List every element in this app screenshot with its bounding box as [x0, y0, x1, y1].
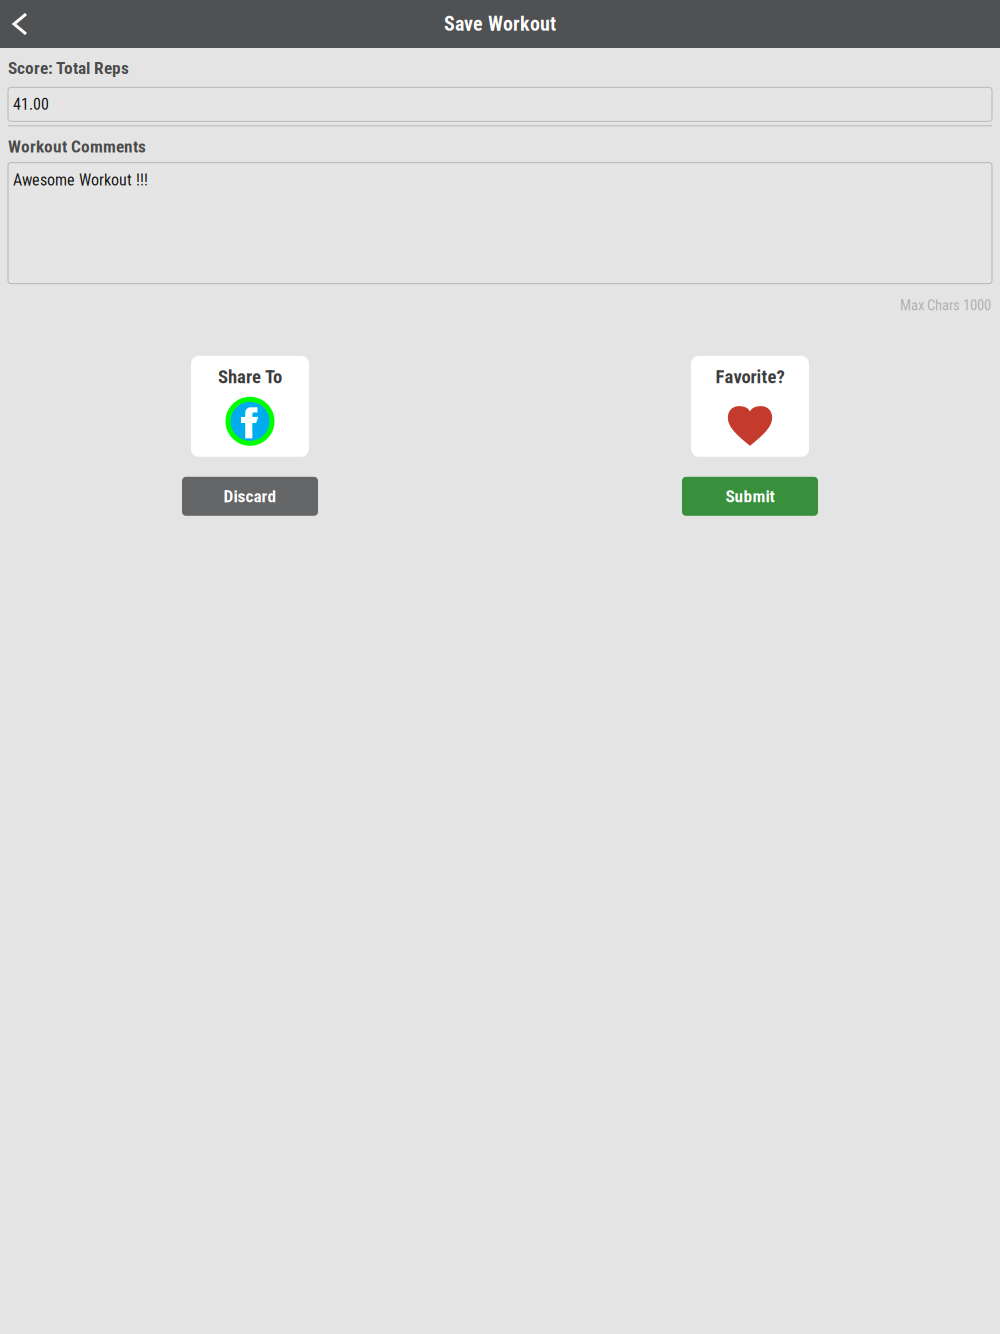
button[interactable]: Discard — [182, 477, 318, 516]
staticText: Max Chars 1000 — [900, 297, 991, 314]
button[interactable]: Score: Total Reps — [0, 87, 1000, 121]
staticText: Discard — [223, 486, 276, 506]
staticText: 41.00 — [13, 95, 49, 114]
staticText: Save Workout — [444, 12, 556, 36]
staticText: Score: Total Reps — [8, 58, 129, 78]
staticText: Favorite? — [715, 366, 784, 388]
staticText: Workout Comments — [8, 136, 146, 157]
button[interactable]: Back — [0, 0, 40, 48]
button[interactable]: Share To Facebook — [191, 356, 309, 457]
staticText: Submit — [725, 486, 774, 506]
staticText: Share To — [218, 366, 282, 388]
button[interactable]: Submit — [682, 477, 818, 516]
button[interactable]: Workout Comments — [0, 163, 1000, 284]
staticText: Awesome Workout !!! — [13, 171, 148, 189]
button[interactable]: Favorite — [691, 356, 809, 457]
